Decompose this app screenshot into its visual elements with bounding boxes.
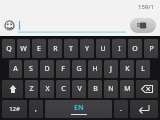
button[interactable]: Send [130, 18, 156, 33]
staticText: I [118, 44, 121, 54]
staticText: E [37, 44, 41, 54]
button[interactable]: 12# [2, 100, 27, 118]
staticText: K [125, 64, 130, 74]
staticText: B [93, 84, 98, 94]
staticText: G [76, 64, 82, 74]
staticText: U [100, 44, 106, 54]
other: Backspace [136, 80, 158, 98]
staticText: Z [29, 84, 34, 94]
button[interactable]: S [24, 60, 38, 78]
staticText: C [61, 84, 66, 94]
other: Enter [130, 100, 158, 118]
button[interactable]: Q [2, 39, 15, 58]
button[interactable]: Y [80, 39, 94, 58]
button[interactable]: M [120, 80, 134, 98]
staticText: D [44, 64, 50, 74]
button[interactable]: H [88, 60, 102, 78]
staticText: P [149, 44, 154, 54]
button[interactable]: Backspace [136, 80, 158, 98]
staticText: H [92, 64, 98, 74]
staticText: Y [85, 44, 89, 54]
staticText: EN [74, 103, 84, 113]
button[interactable]: G [72, 60, 86, 78]
button[interactable]: T [64, 39, 78, 58]
button[interactable]: C [56, 80, 70, 98]
button[interactable]: P [144, 39, 158, 58]
staticText: 159/1 [138, 3, 154, 11]
staticText: V [77, 84, 82, 94]
button[interactable]: N [104, 80, 118, 98]
staticText: A [13, 64, 18, 74]
button[interactable]: Z [25, 80, 38, 98]
staticText: W [20, 44, 27, 54]
button[interactable]: R [48, 39, 62, 58]
button[interactable]: K [120, 60, 134, 78]
other: Shift [2, 80, 23, 98]
staticText: N [108, 84, 114, 94]
button[interactable]: B [88, 80, 102, 98]
staticText: M [124, 84, 131, 94]
button[interactable]: W [17, 39, 30, 58]
button[interactable]: D [40, 60, 54, 78]
button[interactable]: X [40, 80, 54, 98]
button[interactable]: Enter [130, 100, 158, 118]
staticText: L [141, 64, 145, 74]
button[interactable]: Emoji [3, 19, 16, 32]
button[interactable]: F [56, 60, 70, 78]
staticText: T [69, 44, 73, 54]
button[interactable] [18, 19, 126, 33]
other: Space [45, 100, 112, 118]
staticText: F [61, 64, 65, 74]
staticText: S [29, 64, 33, 74]
button[interactable]: . [114, 100, 128, 118]
button[interactable]: E [32, 39, 46, 58]
button[interactable]: Shift [2, 80, 23, 98]
button[interactable]: O [128, 39, 142, 58]
staticText: , [35, 104, 37, 114]
staticText: 12# [9, 105, 20, 113]
button[interactable]: A [9, 60, 22, 78]
button[interactable]: U [96, 39, 110, 58]
button[interactable]: L [136, 60, 150, 78]
staticText: R [53, 44, 58, 54]
button[interactable]: I [112, 39, 126, 58]
staticText: X [45, 84, 50, 94]
staticText: O [132, 44, 138, 54]
staticText: Q [6, 44, 12, 54]
staticText: . [120, 104, 122, 114]
button[interactable]: Space [45, 100, 112, 118]
button[interactable]: , [29, 100, 43, 118]
button[interactable]: J [104, 60, 118, 78]
button[interactable]: V [72, 80, 86, 98]
staticText: J [110, 64, 112, 74]
